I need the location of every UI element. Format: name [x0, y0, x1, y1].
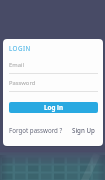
- button[interactable]: Sign Up: [72, 126, 95, 135]
- staticText: Sign Up: [72, 126, 95, 134]
- staticText: Email: [9, 61, 24, 69]
- staticText: Log in: [44, 103, 64, 112]
- button[interactable]: Forgot password ?: [9, 126, 63, 135]
- staticText: Password: [9, 79, 36, 87]
- staticText: LOGIN: [9, 44, 31, 52]
- staticText: Forgot password ?: [9, 126, 63, 134]
- button[interactable]: Password: [9, 77, 98, 92]
- button[interactable]: Email: [9, 59, 98, 74]
- button[interactable]: Log in: [9, 102, 98, 113]
